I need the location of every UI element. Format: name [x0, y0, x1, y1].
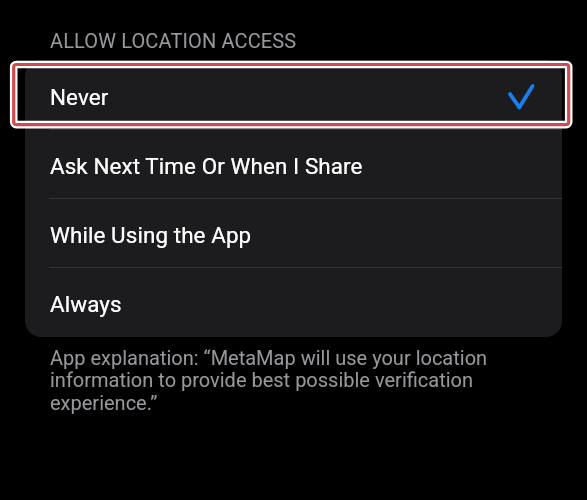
- staticText: Always: [50, 291, 122, 317]
- staticText: Never: [50, 84, 109, 110]
- button[interactable]: Always: [25, 267, 562, 336]
- staticText: ALLOW LOCATION ACCESS: [50, 29, 297, 52]
- button[interactable]: Ask Next Time Or When I Share: [25, 129, 562, 198]
- staticText: Ask Next Time Or When I Share: [50, 153, 363, 179]
- other: Selected: [510, 86, 533, 108]
- staticText: App explanation: “MetaMap will use your …: [50, 346, 493, 415]
- button[interactable]: While Using the App: [25, 198, 562, 267]
- button[interactable]: Never: [25, 60, 562, 129]
- staticText: While Using the App: [50, 222, 252, 248]
